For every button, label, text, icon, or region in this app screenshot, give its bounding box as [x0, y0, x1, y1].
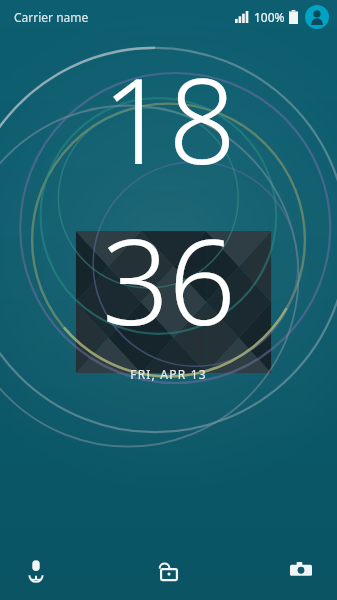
button[interactable]: Unlock	[143, 544, 195, 596]
staticText: 36	[102, 199, 235, 360]
button[interactable]: Camera	[275, 544, 327, 596]
staticText: Carrier name	[14, 9, 89, 25]
button[interactable]: User profile	[305, 5, 329, 29]
staticText: 100%	[254, 9, 285, 25]
staticText: FRI, APR 13	[130, 366, 207, 382]
button[interactable]: Voice assistant	[10, 544, 62, 596]
staticText: 18	[102, 38, 235, 199]
